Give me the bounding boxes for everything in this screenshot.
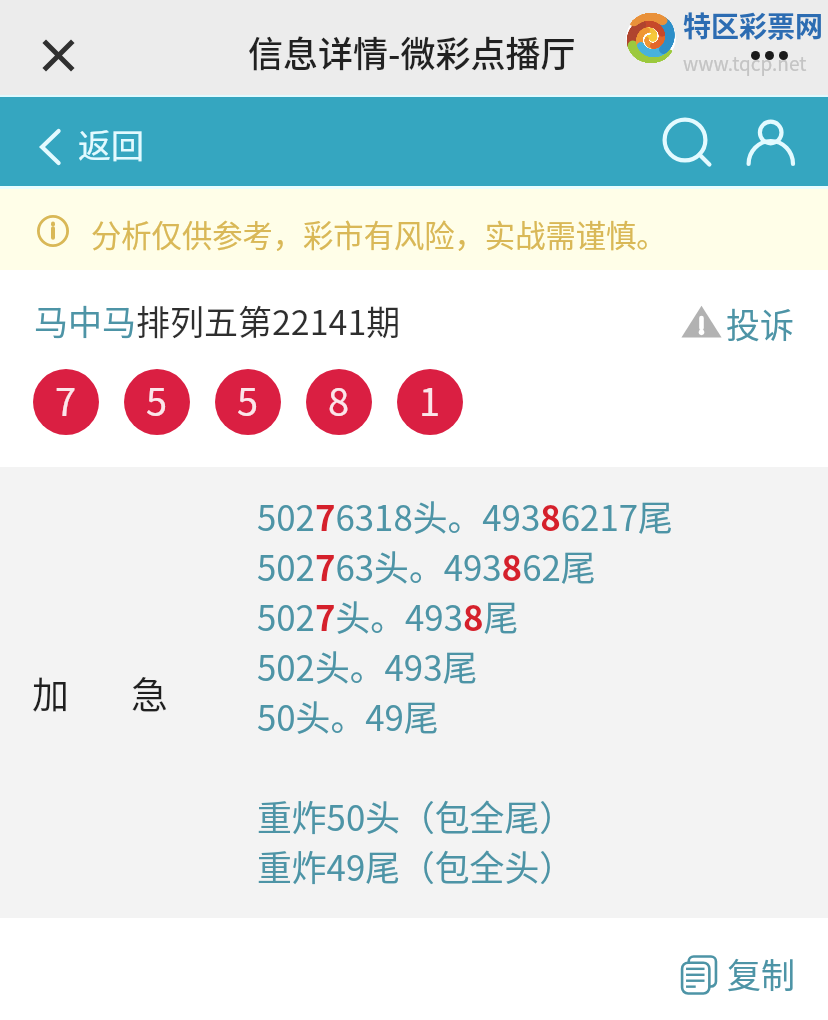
staticText: 信息详情-微彩点播厅 [248, 26, 576, 77]
button[interactable]: 投诉 [673, 292, 802, 353]
staticText: 1 [419, 372, 441, 427]
staticText: 急 [131, 666, 168, 720]
button[interactable]: 返回 [40, 115, 144, 179]
button[interactable]: Search [655, 111, 719, 175]
staticText: 50头。49尾 [257, 691, 439, 741]
staticText: 重炸49尾（包全头） [257, 841, 575, 891]
staticText: 502头。493尾 [257, 641, 478, 691]
staticText: 5 [146, 372, 168, 427]
staticText: 5027头。4938尾 [257, 591, 519, 641]
button[interactable]: 马中马排列五第22141期 [34, 296, 401, 345]
staticText: 5 [237, 372, 259, 427]
button[interactable]: 5 [215, 369, 281, 435]
staticText: 50276318头。49386217尾 [257, 491, 673, 541]
staticText: 返回 [78, 120, 144, 168]
button[interactable]: 5 [124, 369, 190, 435]
button[interactable]: Profile [740, 111, 804, 175]
staticText: www.tqcp.net [683, 49, 807, 77]
button[interactable]: 8 [306, 369, 372, 435]
staticText: 7 [55, 372, 77, 427]
staticText: 加 [32, 666, 69, 720]
button[interactable]: 复制 [669, 942, 805, 1007]
staticText: 特区彩票网 [683, 5, 824, 46]
staticText: 投诉 [726, 299, 794, 348]
staticText: 重炸50头（包全尾） [257, 791, 575, 841]
button[interactable]: 1 [397, 369, 463, 435]
button[interactable]: 7 [33, 369, 99, 435]
staticText: 分析仅供参考，彩市有风险，实战需谨慎。 [91, 212, 667, 256]
staticText: 8 [328, 372, 350, 427]
button[interactable]: Close [26, 23, 90, 87]
staticText: 复制 [727, 949, 795, 998]
staticText: 502763头。493862尾 [257, 541, 596, 591]
